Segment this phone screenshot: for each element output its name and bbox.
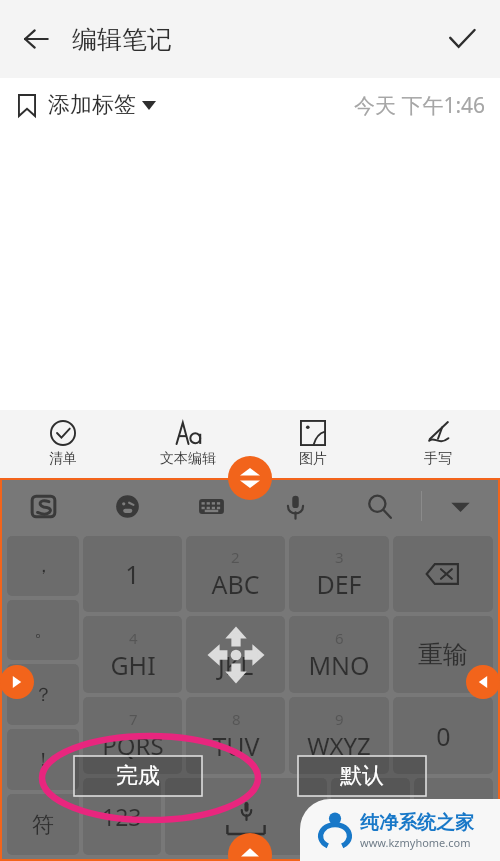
button[interactable]: ？ [7,664,79,725]
staticText: 6 [335,628,344,648]
button[interactable] [165,778,327,855]
button[interactable]: Back [10,13,62,65]
button[interactable]: Emoji [85,480,169,532]
button[interactable]: 123 [83,778,161,855]
button[interactable]: 图片 [250,410,375,478]
staticText: 添加标签 [48,91,136,119]
staticText: 今天 下午1:46 [354,91,486,120]
staticText: 8 [232,709,241,729]
staticText: PQRS [102,729,164,762]
button[interactable]: 清单 [0,410,125,478]
button[interactable]: Hide keyboard [422,480,498,532]
staticText: ABC [211,567,260,601]
staticText: 123 [102,801,142,832]
button[interactable] [414,778,493,855]
staticText: 3 [335,547,344,567]
button[interactable]: Move up [228,833,272,861]
button[interactable]: Search [337,480,421,532]
staticText: 5 [232,628,241,648]
staticText: 2 [231,547,240,567]
staticText: 图片 [299,450,327,468]
staticText: 清单 [49,450,77,468]
staticText: ？ [34,683,53,707]
staticText: 9 [335,709,344,729]
button[interactable]: Expand left [0,665,34,699]
staticText: DEF [316,567,362,601]
staticText: 4 [129,628,138,648]
button[interactable]: 7 [83,697,182,774]
staticText: 0 [436,719,451,753]
staticText: 中 [359,802,382,831]
staticText: 默认 [340,762,384,790]
staticText: www.kzmyhome.com [360,835,471,850]
button[interactable]: 5 [186,616,285,693]
staticText: ， [34,554,53,578]
staticText: 重输 [418,639,468,670]
staticText: 文本编辑 [160,450,216,468]
button[interactable]: 9 [289,697,389,774]
button[interactable]: Resize keyboard [228,456,272,500]
button[interactable]: 8 [186,697,285,774]
button[interactable]: 3 [289,536,389,612]
button[interactable]: 中 [331,778,410,855]
button[interactable]: 重输 [393,616,493,693]
button[interactable]: 6 [289,616,389,693]
staticText: 符 [32,811,54,839]
button[interactable]: Keyboard layout [169,480,253,532]
staticText: 。 [34,618,53,642]
staticText: JKL [218,648,254,682]
button[interactable]: 4 [83,616,182,693]
button[interactable]: 默认 [298,756,426,796]
button[interactable]: 2 [186,536,285,612]
staticText: 手写 [424,450,452,468]
staticText: WXYZ [307,729,371,762]
button[interactable] [393,536,493,612]
button[interactable]: Voice input [253,480,337,532]
staticText: ！ [34,748,53,772]
staticText: 1 [125,557,140,591]
button[interactable]: Save [436,13,488,65]
button[interactable]: 添加标签 [18,91,156,119]
staticText: GHI [110,648,156,682]
button[interactable]: Expand right [466,665,500,699]
staticText: 纯净系统之家 [360,811,474,835]
staticText: 完成 [116,762,160,790]
button[interactable]: 手写 [375,410,500,478]
button[interactable]: Sogou [2,480,85,532]
staticText: MNO [308,648,370,682]
staticText: 7 [129,709,138,729]
button[interactable]: 符 [7,794,79,855]
button[interactable]: 完成 [74,756,202,796]
staticText: TUV [212,729,260,763]
button[interactable]: 文本编辑 [125,410,250,478]
staticText: 编辑笔记 [72,24,172,55]
button[interactable]: 1 [83,536,182,612]
button[interactable]: 0 [393,697,493,774]
button[interactable]: ！ [7,729,79,790]
